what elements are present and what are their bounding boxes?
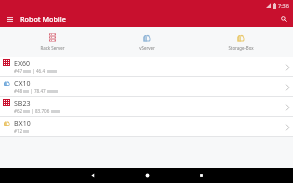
button[interactable]: CX10 (0, 77, 293, 97)
staticText: #62 (14, 108, 23, 114)
button[interactable]: BX10 (0, 117, 293, 137)
staticText: Rack Server (40, 45, 65, 51)
staticText: BX10 (14, 119, 31, 129)
button[interactable]: Search (275, 11, 293, 27)
button[interactable]: Rack Server (5, 27, 100, 57)
staticText: #48 (14, 88, 23, 94)
staticText: | 46.4 (31, 68, 47, 74)
staticText: SB23 (14, 99, 31, 109)
button[interactable]: EX60 (0, 57, 293, 77)
staticText: Robot Mobile (20, 14, 66, 24)
button[interactable]: vServer (100, 27, 194, 57)
staticText: vServer (139, 45, 155, 51)
button[interactable]: SB23 (0, 97, 293, 117)
staticText: | 83.706 (30, 108, 51, 114)
button[interactable]: Back (75, 168, 111, 183)
staticText: Storage-Box (228, 45, 254, 51)
staticText: #47 (14, 68, 23, 74)
button[interactable]: Open navigation drawer (0, 11, 20, 27)
staticText: 7:36 (278, 2, 289, 9)
staticText: EX60 (14, 59, 31, 69)
staticText: #12 (14, 128, 23, 134)
staticText: CX10 (14, 79, 31, 89)
button[interactable]: Recent apps (183, 168, 219, 183)
button[interactable]: Home (129, 168, 165, 183)
button[interactable]: Storage-Box (194, 27, 288, 57)
staticText: | 78.47 (29, 88, 47, 94)
